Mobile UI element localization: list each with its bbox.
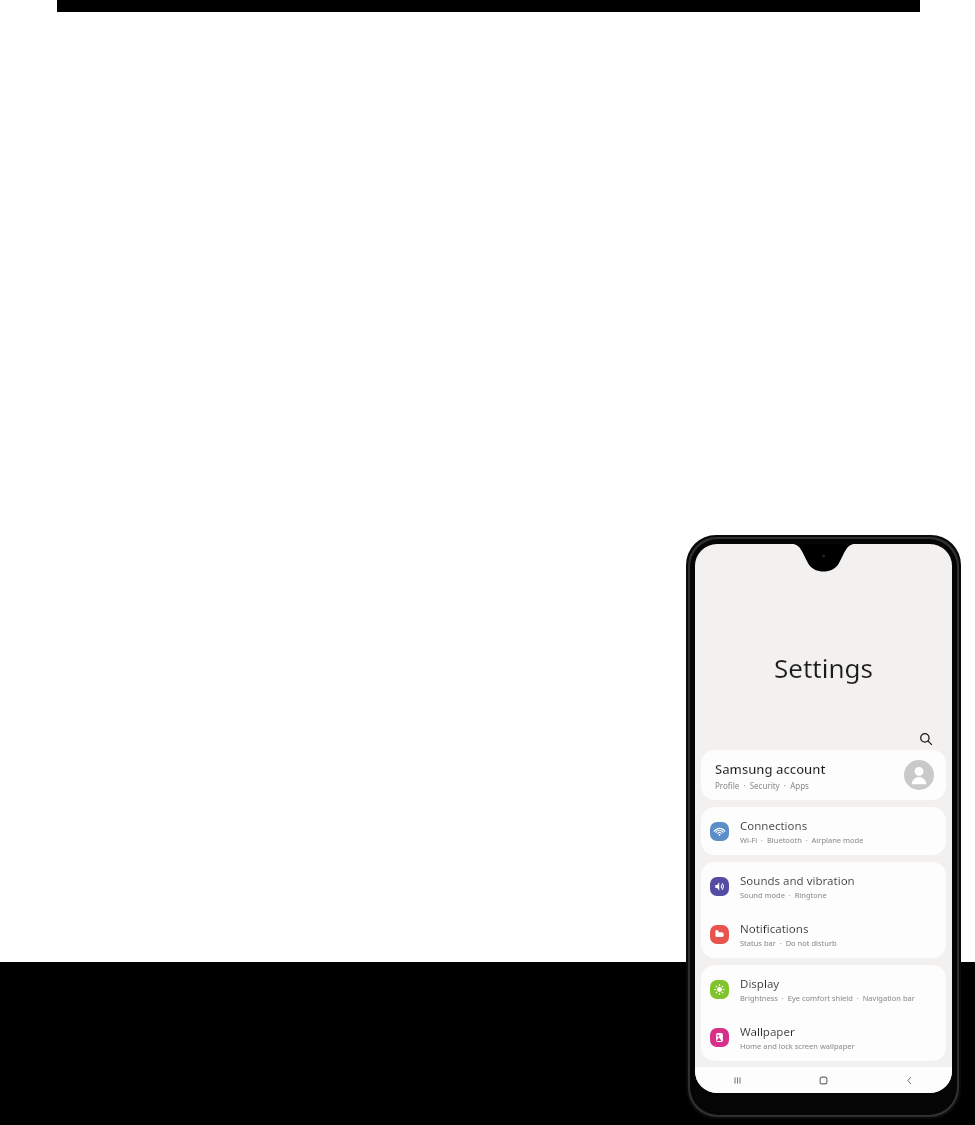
button[interactable]: Home bbox=[780, 1067, 866, 1093]
staticText: Wi-Fi · Bluetooth · Airplane mode bbox=[740, 835, 864, 845]
button[interactable]: Samsung account bbox=[701, 750, 946, 800]
staticText: Connections bbox=[740, 818, 808, 834]
button[interactable]: Back bbox=[866, 1067, 952, 1093]
button[interactable]: Notifications bbox=[701, 910, 946, 958]
staticText: Home and lock screen wallpaper bbox=[740, 1041, 855, 1051]
button[interactable]: Display bbox=[701, 965, 946, 1013]
staticText: Sounds and vibration bbox=[740, 873, 855, 889]
staticText: Wallpaper bbox=[740, 1024, 795, 1040]
staticText: Status bar · Do not disturb bbox=[740, 938, 837, 948]
button[interactable]: Wallpaper bbox=[701, 1013, 946, 1061]
button[interactable]: Sounds and vibration bbox=[701, 862, 946, 910]
button[interactable]: Recents bbox=[695, 1067, 780, 1093]
staticText: Sound mode · Ringtone bbox=[740, 890, 827, 900]
staticText: Display bbox=[740, 976, 780, 992]
button[interactable]: Connections bbox=[701, 807, 946, 855]
button[interactable]: Search bbox=[913, 726, 939, 752]
staticText: Brightness · Eye comfort shield · Naviga… bbox=[740, 993, 915, 1003]
staticText: Notifications bbox=[740, 921, 809, 937]
staticText: Profile · Security · Apps bbox=[715, 780, 809, 791]
staticText: Samsung account bbox=[715, 760, 826, 778]
staticText: Settings bbox=[695, 650, 952, 685]
